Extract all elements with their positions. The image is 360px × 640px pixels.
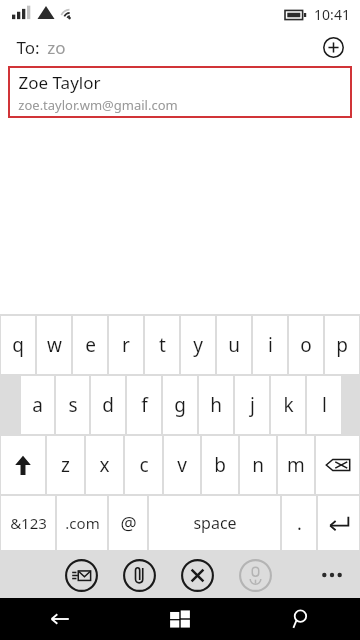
- button[interactable]: k: [271, 376, 305, 434]
- staticText: n: [252, 452, 264, 478]
- button[interactable]: y: [181, 316, 215, 374]
- staticText: x: [99, 452, 110, 478]
- button[interactable]: Start: [120, 598, 240, 640]
- button[interactable]: z: [47, 436, 84, 494]
- button[interactable]: b: [202, 436, 238, 494]
- button[interactable]: h: [199, 376, 233, 434]
- button[interactable]: l: [307, 376, 341, 434]
- staticText: g: [174, 392, 186, 418]
- button[interactable]: e: [73, 316, 107, 374]
- staticText: s: [68, 392, 78, 418]
- button[interactable]: Search: [240, 598, 360, 640]
- staticText: t: [159, 332, 166, 358]
- button[interactable]: j: [235, 376, 269, 434]
- staticText: c: [139, 452, 149, 478]
- button[interactable]: m: [278, 436, 314, 494]
- staticText: v: [177, 452, 187, 478]
- button[interactable]: Attach: [120, 556, 158, 594]
- button[interactable]: Close: [178, 556, 216, 594]
- staticText: b: [214, 452, 226, 478]
- button[interactable]: Send: [62, 556, 100, 594]
- button[interactable]: v: [164, 436, 200, 494]
- staticText: l: [322, 392, 327, 418]
- button[interactable]: Shift: [1, 436, 45, 494]
- button[interactable]: c: [125, 436, 162, 494]
- button[interactable]: a: [21, 376, 54, 434]
- staticText: 10:41: [314, 5, 350, 24]
- button[interactable]: n: [240, 436, 276, 494]
- button[interactable]: @: [109, 496, 147, 550]
- staticText: i: [268, 332, 273, 358]
- button[interactable]: Enter: [318, 496, 359, 550]
- staticText: &123: [10, 513, 47, 533]
- staticText: p: [336, 332, 348, 358]
- button[interactable]: t: [145, 316, 179, 374]
- button[interactable]: &123: [1, 496, 55, 550]
- button[interactable]: x: [86, 436, 123, 494]
- button[interactable]: Zoe Taylor: [8, 66, 352, 118]
- button[interactable]: w: [37, 316, 71, 374]
- staticText: z: [61, 452, 70, 478]
- staticText: u: [228, 332, 240, 358]
- staticText: d: [102, 392, 114, 418]
- button[interactable]: p: [325, 316, 359, 374]
- button[interactable]: Dictate: [236, 556, 274, 594]
- staticText: e: [85, 332, 96, 358]
- button[interactable]: i: [253, 316, 287, 374]
- button[interactable]: r: [109, 316, 143, 374]
- staticText: a: [32, 392, 43, 418]
- staticText: h: [210, 392, 222, 418]
- staticText: zoe.taylor.wm@gmail.com: [18, 96, 178, 114]
- staticText: Zoe Taylor: [18, 71, 101, 94]
- button[interactable]: g: [163, 376, 197, 434]
- button[interactable]: f: [127, 376, 161, 434]
- staticText: .com: [65, 513, 100, 533]
- button[interactable]: More options: [312, 556, 352, 594]
- button[interactable]: Add recipient: [316, 30, 350, 64]
- button[interactable]: u: [217, 316, 251, 374]
- staticText: j: [250, 392, 255, 418]
- staticText: f: [141, 392, 148, 418]
- button[interactable]: space: [149, 496, 280, 550]
- staticText: space: [193, 512, 237, 534]
- button[interactable]: .com: [57, 496, 107, 550]
- staticText: r: [122, 332, 130, 358]
- staticText: y: [193, 332, 203, 358]
- button[interactable]: q: [1, 316, 35, 374]
- staticText: w: [47, 332, 62, 358]
- staticText: To:: [16, 36, 40, 59]
- staticText: .: [297, 511, 302, 536]
- button[interactable]: Backspace: [316, 436, 359, 494]
- staticText: @: [120, 511, 137, 536]
- button[interactable]: .: [282, 496, 316, 550]
- staticText: m: [287, 452, 305, 478]
- staticText: zo: [47, 36, 66, 59]
- staticText: k: [283, 392, 294, 418]
- button[interactable]: d: [91, 376, 125, 434]
- button[interactable]: s: [56, 376, 89, 434]
- button[interactable]: o: [289, 316, 323, 374]
- staticText: q: [12, 332, 24, 358]
- staticText: o: [300, 332, 312, 358]
- button[interactable]: Back: [0, 598, 120, 640]
